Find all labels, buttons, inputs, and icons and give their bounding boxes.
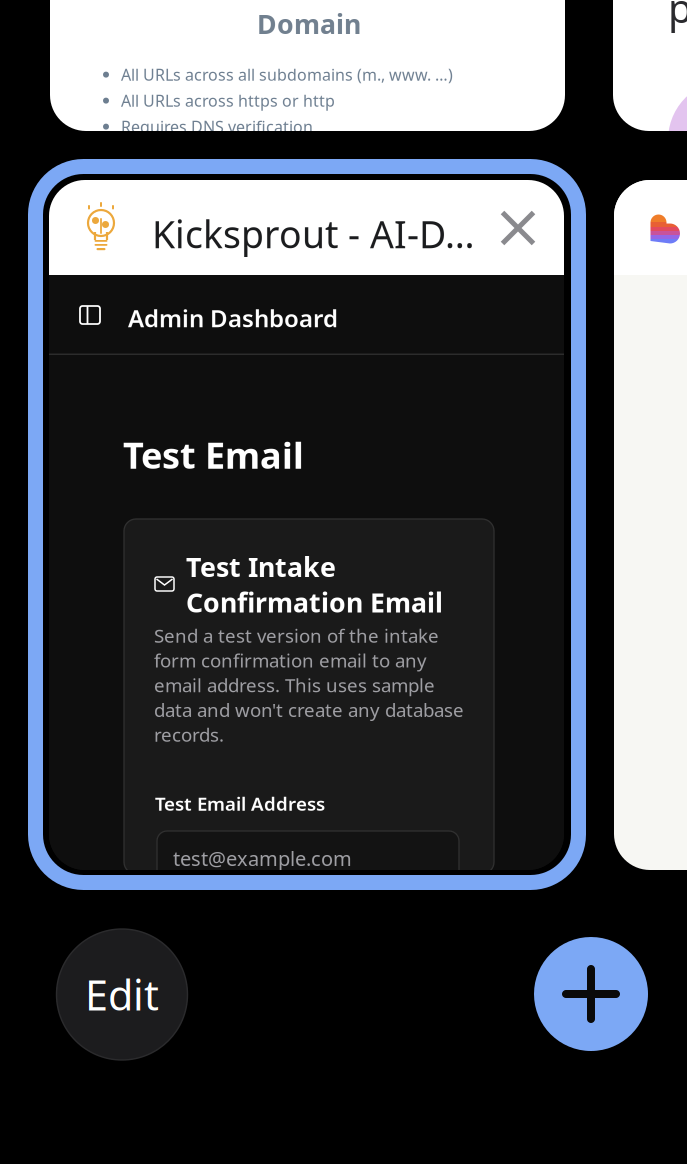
button[interactable]: Kicksprout tab: [49, 180, 564, 870]
button[interactable]: Close tab: [491, 201, 545, 255]
staticText: Test Email Address: [155, 791, 325, 816]
staticText: All URLs across https or http: [121, 90, 335, 111]
button[interactable]: Profile tab: [613, 0, 687, 131]
staticText: Requires DNS verification: [121, 116, 313, 137]
staticText: Test Intake Confirmation Email: [186, 549, 443, 620]
staticText: test@example.com: [173, 845, 352, 872]
staticText: pro: [668, 0, 687, 34]
staticText: Edit: [85, 967, 159, 1022]
staticText: Admin Dashboard: [128, 302, 338, 334]
button[interactable]: Domain tab: [50, 0, 565, 131]
button[interactable]: Health tab: [614, 180, 687, 870]
staticText: Kicksprout - AI-D…: [152, 209, 475, 259]
staticText: Send a test version of the intake form c…: [154, 623, 464, 747]
staticText: All URLs across all subdomains (m., www.…: [121, 64, 453, 85]
staticText: Domain: [257, 6, 361, 41]
button[interactable]: New tab: [534, 937, 648, 1051]
button[interactable]: Edit: [49, 929, 195, 1060]
button[interactable]: Toggle sidebar: [67, 292, 113, 338]
staticText: Test Email: [123, 431, 304, 479]
